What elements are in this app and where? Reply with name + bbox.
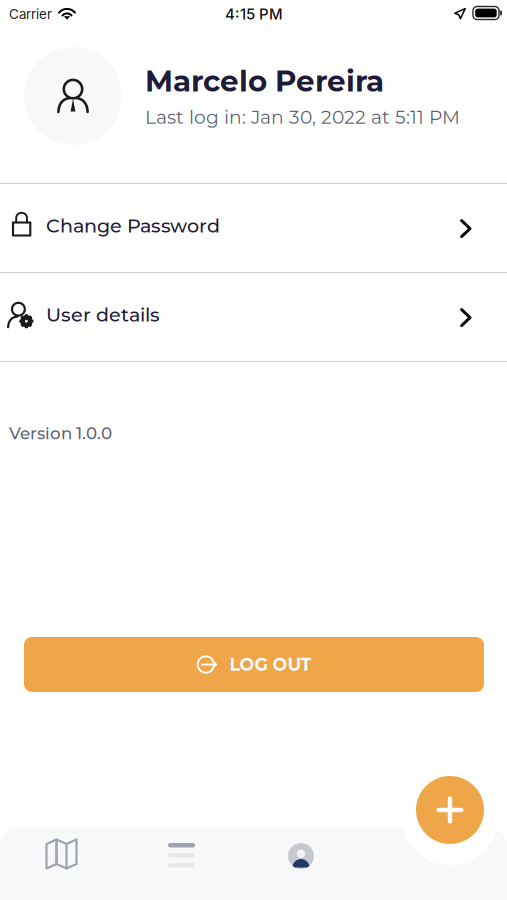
button[interactable]: Map — [0, 828, 124, 900]
staticText: Last log in: Jan 30, 2022 at 5:11 PM — [145, 106, 460, 129]
staticText: User details — [46, 303, 160, 326]
staticText: Marcelo Pereira — [145, 63, 384, 99]
button[interactable]: LOG OUT — [24, 637, 484, 692]
staticText: 4:15 PM — [225, 5, 283, 23]
button[interactable]: List — [0, 828, 124, 900]
staticText: Change Password — [46, 214, 220, 237]
button[interactable]: Profile — [0, 828, 124, 900]
staticText: Carrier — [9, 6, 52, 22]
staticText: Version 1.0.0 — [9, 423, 112, 443]
button[interactable]: User details — [0, 273, 507, 361]
staticText: LOG OUT — [229, 654, 311, 675]
button[interactable]: Change Password — [0, 184, 507, 272]
